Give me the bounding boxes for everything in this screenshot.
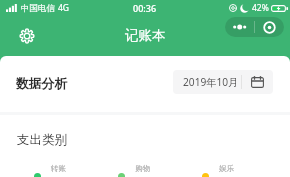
staticText: 支出类别	[17, 132, 67, 148]
button[interactable]: 更多	[225, 17, 254, 37]
staticText: 购物	[135, 164, 151, 174]
button[interactable]: 关闭	[255, 17, 284, 37]
staticText: 4G	[58, 2, 70, 14]
button[interactable]: 娱乐	[202, 164, 235, 174]
staticText: 转账	[51, 164, 67, 174]
staticText: 42%	[252, 2, 269, 14]
button[interactable]: 购物	[118, 164, 151, 174]
staticText: 娱乐	[219, 164, 235, 174]
button[interactable]: 转账	[34, 164, 67, 174]
staticText: 00:36	[133, 2, 157, 14]
staticText: 中国电信	[21, 3, 55, 14]
button[interactable]: 2019年10月	[173, 70, 273, 94]
staticText: 数据分析	[16, 76, 68, 92]
button[interactable]: 设置	[17, 26, 36, 45]
staticText: 2019年10月	[183, 75, 239, 89]
staticText: 记账本	[125, 27, 166, 44]
